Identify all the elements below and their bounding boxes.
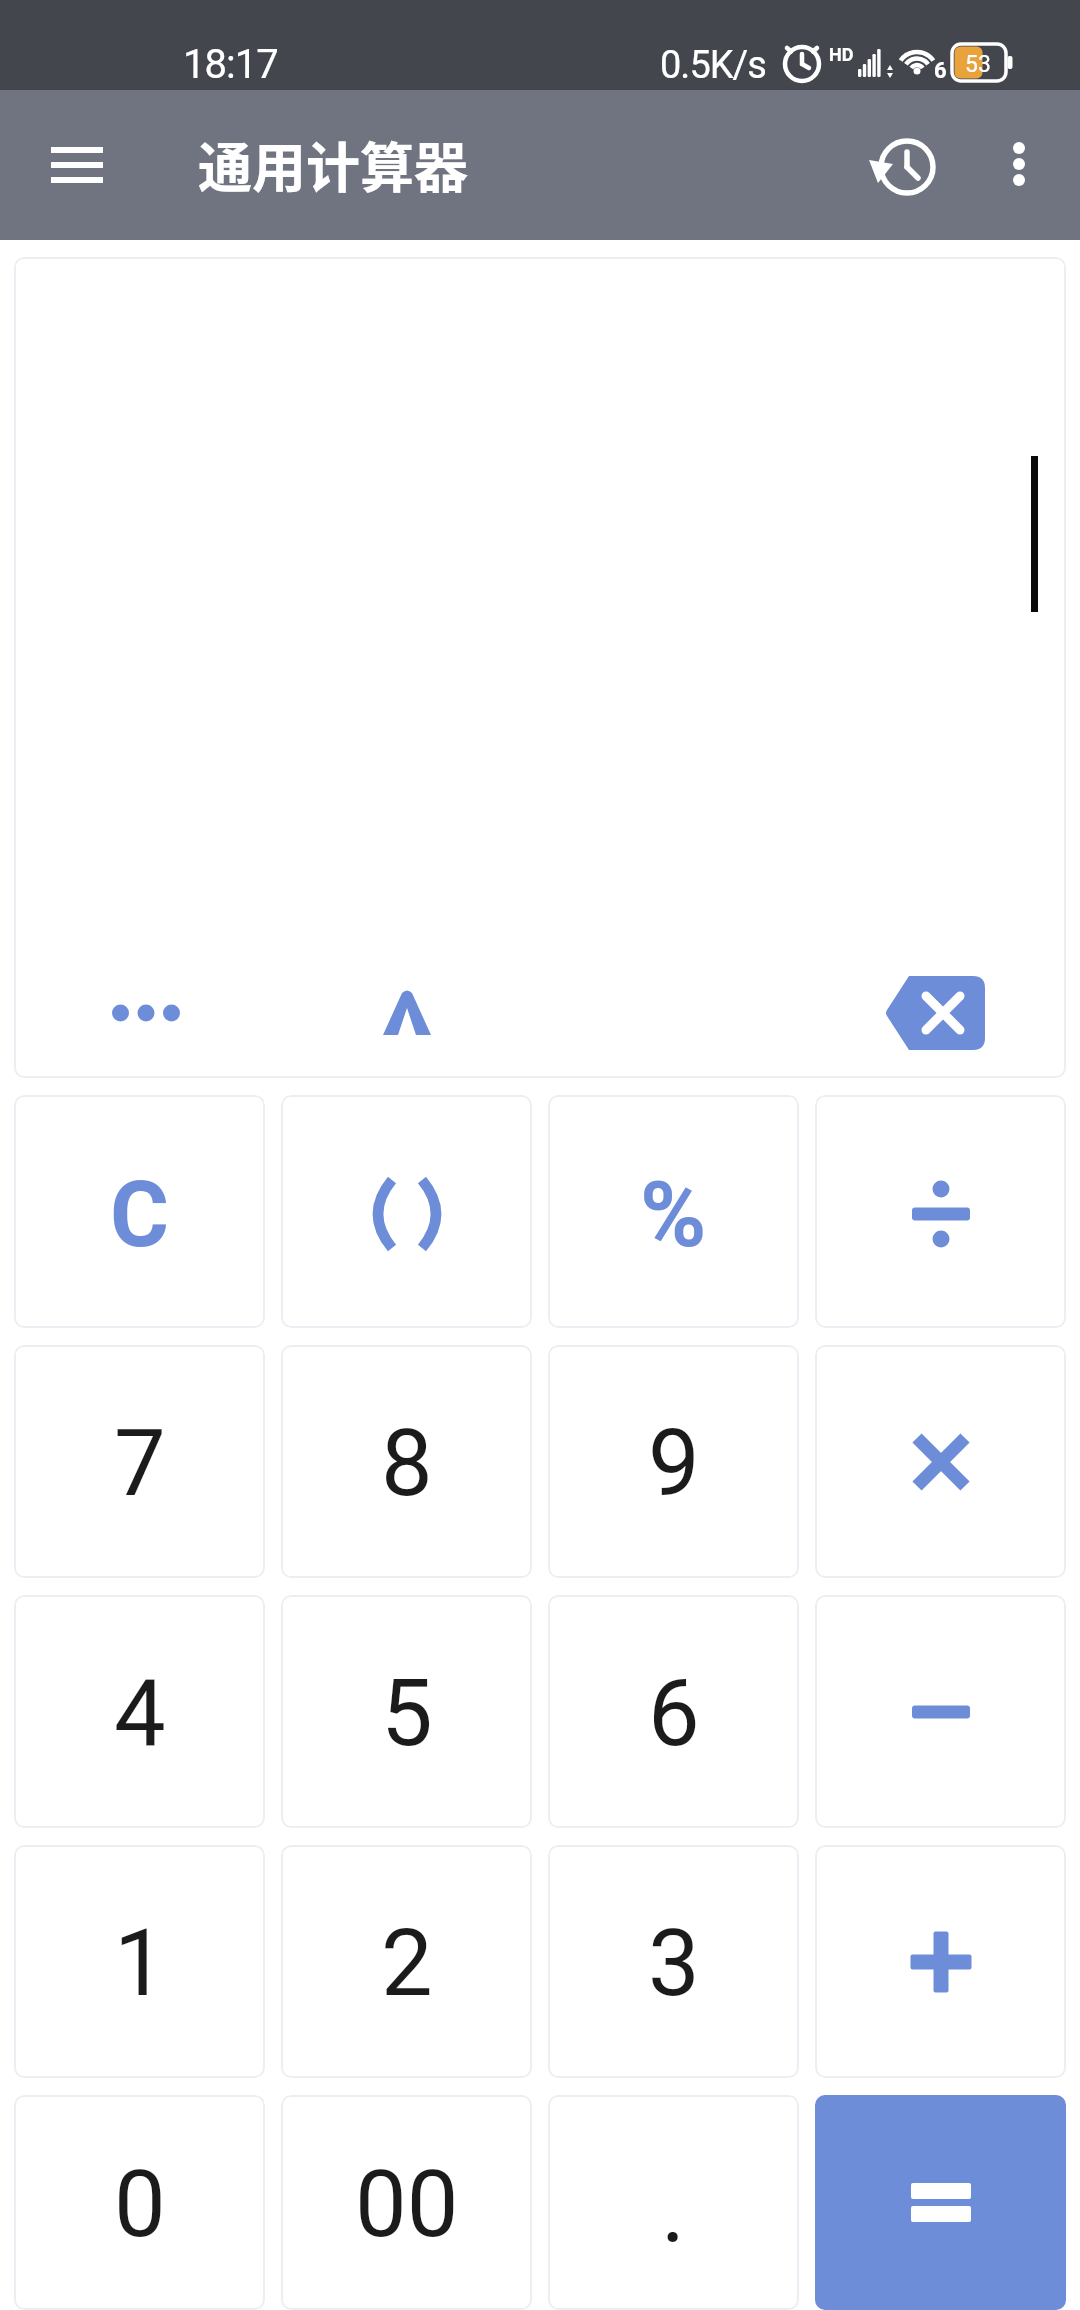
staticText: 5 bbox=[381, 1660, 433, 1768]
button[interactable]: 4 bbox=[14, 1595, 265, 1828]
button[interactable]: 0 bbox=[14, 2095, 265, 2310]
staticText: 通用计算器 bbox=[198, 125, 468, 203]
button[interactable]: C bbox=[14, 1095, 265, 1328]
staticText: 4 bbox=[114, 1660, 166, 1768]
staticText: 6 bbox=[648, 1660, 700, 1768]
button[interactable] bbox=[76, 963, 216, 1063]
button[interactable]: 00 bbox=[281, 2095, 532, 2310]
staticText: % bbox=[640, 1163, 707, 1268]
button[interactable]: 1 bbox=[14, 1845, 265, 2078]
button[interactable] bbox=[865, 963, 1005, 1063]
staticText: 0.5K/s bbox=[660, 43, 766, 88]
staticText: 53 bbox=[965, 51, 991, 78]
button[interactable] bbox=[815, 1595, 1066, 1828]
button[interactable] bbox=[863, 127, 943, 207]
button[interactable]: 3 bbox=[548, 1845, 799, 2078]
staticText: 3 bbox=[648, 1910, 700, 2018]
staticText: 7 bbox=[114, 1410, 166, 1518]
button[interactable] bbox=[30, 134, 124, 196]
staticText: 9 bbox=[648, 1410, 700, 1518]
button[interactable] bbox=[815, 2095, 1066, 2310]
button[interactable]: 6 bbox=[548, 1595, 799, 1828]
staticText: C bbox=[110, 1163, 169, 1268]
button[interactable]: 2 bbox=[281, 1845, 532, 2078]
staticText: 1 bbox=[114, 1910, 166, 2018]
button[interactable] bbox=[815, 1845, 1066, 2078]
button[interactable] bbox=[815, 1095, 1066, 1328]
button[interactable] bbox=[337, 963, 477, 1063]
button[interactable] bbox=[815, 1345, 1066, 1578]
button[interactable]: 8 bbox=[281, 1345, 532, 1578]
staticText: 6 bbox=[934, 58, 947, 84]
staticText: HD bbox=[829, 44, 854, 65]
staticText: 0 bbox=[114, 2151, 166, 2259]
button[interactable]: 5 bbox=[281, 1595, 532, 1828]
button[interactable]: 9 bbox=[548, 1345, 799, 1578]
button[interactable] bbox=[281, 1095, 532, 1328]
button[interactable] bbox=[985, 130, 1053, 198]
button[interactable]: . bbox=[548, 2095, 799, 2310]
staticText: 2 bbox=[381, 1910, 433, 2018]
staticText: 18:17 bbox=[183, 41, 278, 88]
button[interactable]: 7 bbox=[14, 1345, 265, 1578]
staticText: 8 bbox=[381, 1410, 433, 1518]
button[interactable]: % bbox=[548, 1095, 799, 1328]
staticText: 00 bbox=[355, 2151, 459, 2259]
staticText: . bbox=[661, 2156, 686, 2264]
